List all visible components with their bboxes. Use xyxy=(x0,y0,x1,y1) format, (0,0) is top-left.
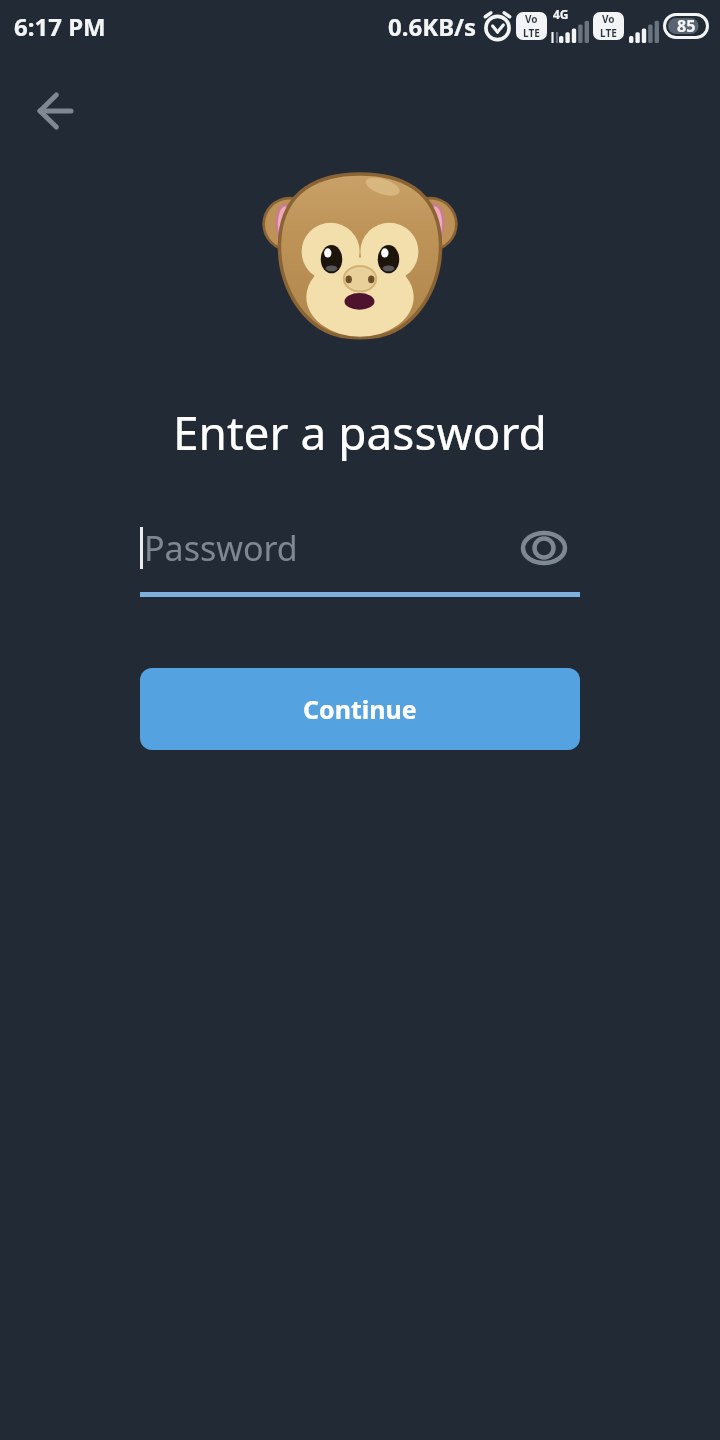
button[interactable]: Password xyxy=(140,525,580,571)
staticText: Continue xyxy=(303,692,417,726)
staticText: Vo xyxy=(525,12,538,26)
staticText: 6:17 PM xyxy=(14,10,106,43)
button[interactable] xyxy=(28,84,82,138)
button[interactable] xyxy=(520,525,568,571)
button[interactable]: Continue xyxy=(140,668,580,750)
staticText: Vo xyxy=(602,12,615,26)
staticText: 85 xyxy=(677,15,696,37)
staticText: Password xyxy=(144,525,298,571)
staticText: 4G xyxy=(553,6,569,22)
staticText: 0.6KB/s xyxy=(388,10,477,43)
staticText: LTE xyxy=(523,26,540,40)
staticText: Enter a password xyxy=(173,401,547,464)
staticText: LTE xyxy=(600,26,617,40)
